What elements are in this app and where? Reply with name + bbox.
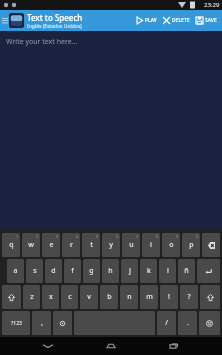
button[interactable]: m bbox=[140, 285, 158, 309]
staticText: Write your text here... bbox=[6, 37, 78, 47]
staticText: n bbox=[127, 292, 132, 302]
staticText: g bbox=[89, 266, 94, 276]
button[interactable]: e bbox=[42, 233, 60, 257]
button[interactable]: ? bbox=[180, 285, 198, 309]
staticText: 4 bbox=[76, 234, 79, 239]
staticText: Text to Speech bbox=[27, 12, 83, 23]
button[interactable]: Settings bbox=[53, 311, 72, 335]
staticText: SAVE bbox=[205, 17, 217, 24]
staticText: f bbox=[71, 266, 74, 276]
staticText: 0 bbox=[196, 234, 199, 239]
staticText: 3 bbox=[56, 234, 59, 239]
button[interactable]: ! bbox=[160, 285, 178, 309]
staticText: s bbox=[33, 266, 37, 276]
button[interactable]: n bbox=[120, 285, 138, 309]
button[interactable]: k bbox=[140, 259, 157, 283]
button[interactable]: s bbox=[26, 259, 43, 283]
staticText: 8 bbox=[156, 234, 159, 239]
button[interactable]: l bbox=[159, 259, 176, 283]
button[interactable]: y bbox=[102, 233, 120, 257]
staticText: o bbox=[169, 240, 174, 250]
button[interactable]: DELETE bbox=[160, 10, 193, 31]
button[interactable]: i bbox=[142, 233, 160, 257]
button[interactable]: g bbox=[83, 259, 100, 283]
staticText: m bbox=[146, 292, 153, 302]
button[interactable]: u bbox=[122, 233, 140, 257]
staticText: ! bbox=[168, 292, 170, 302]
staticText: l bbox=[167, 266, 169, 276]
staticText: . bbox=[187, 318, 189, 328]
staticText: q bbox=[9, 240, 14, 250]
button[interactable]: Open navigation drawer bbox=[0, 10, 9, 31]
button[interactable]: Enter bbox=[197, 259, 220, 283]
button[interactable]: x bbox=[42, 285, 59, 309]
staticText: Inglés (Estados Unidos) bbox=[27, 23, 82, 30]
staticText: y bbox=[109, 240, 113, 250]
button[interactable]: Home bbox=[96, 337, 126, 355]
staticText: b bbox=[107, 292, 112, 302]
button[interactable]: Back bbox=[33, 337, 63, 355]
button[interactable]: v bbox=[80, 285, 98, 309]
button[interactable]: r bbox=[62, 233, 80, 257]
button[interactable]: o bbox=[162, 233, 180, 257]
staticText: t bbox=[90, 240, 93, 250]
staticText: 5 bbox=[96, 234, 99, 239]
staticText: d bbox=[51, 266, 56, 276]
button[interactable]: Emoji bbox=[199, 311, 220, 335]
button[interactable]: ?123 bbox=[2, 311, 30, 335]
staticText: 23:29 bbox=[204, 1, 220, 9]
staticText: 9 bbox=[176, 234, 179, 239]
staticText: e bbox=[49, 240, 54, 250]
button[interactable]: ñ bbox=[178, 259, 195, 283]
staticText: 7 bbox=[136, 234, 139, 239]
button[interactable]: . bbox=[178, 311, 197, 335]
button[interactable]: f bbox=[64, 259, 81, 283]
button[interactable]: Shift bbox=[200, 285, 220, 309]
staticText: w bbox=[28, 240, 34, 250]
button[interactable]: PLAY bbox=[133, 10, 160, 31]
button[interactable]: Shift bbox=[2, 285, 21, 309]
staticText: v bbox=[87, 292, 91, 302]
staticText: ? bbox=[187, 292, 191, 302]
staticText: PLAY bbox=[145, 17, 157, 24]
button[interactable]: t bbox=[82, 233, 100, 257]
button[interactable]: SAVE bbox=[193, 10, 220, 31]
button[interactable]: Recent apps bbox=[159, 337, 189, 355]
button[interactable]: , bbox=[32, 311, 51, 335]
staticText: 2 bbox=[36, 234, 39, 239]
staticText: p bbox=[189, 240, 194, 250]
button[interactable]: h bbox=[102, 259, 119, 283]
button[interactable]: b bbox=[100, 285, 118, 309]
staticText: a bbox=[13, 266, 18, 276]
button[interactable]: p bbox=[182, 233, 200, 257]
staticText: c bbox=[68, 292, 72, 302]
button[interactable]: d bbox=[45, 259, 62, 283]
staticText: 6 bbox=[116, 234, 119, 239]
staticText: ?123 bbox=[11, 320, 22, 327]
staticText: r bbox=[70, 240, 73, 250]
staticText: / bbox=[165, 318, 168, 328]
staticText: j bbox=[129, 266, 131, 276]
button[interactable]: w bbox=[22, 233, 40, 257]
staticText: x bbox=[49, 292, 53, 302]
button[interactable]: z bbox=[23, 285, 40, 309]
button[interactable]: / bbox=[157, 311, 176, 335]
staticText: u bbox=[129, 240, 134, 250]
staticText: DELETE bbox=[172, 17, 190, 24]
button[interactable]: c bbox=[61, 285, 78, 309]
button[interactable]: a bbox=[7, 259, 24, 283]
staticText: i bbox=[150, 240, 152, 250]
staticText: 1 bbox=[16, 234, 19, 239]
staticText: , bbox=[41, 318, 43, 328]
button[interactable]: Backspace bbox=[202, 233, 220, 257]
staticText: k bbox=[147, 266, 151, 276]
staticText: z bbox=[30, 292, 34, 302]
button[interactable]: j bbox=[121, 259, 138, 283]
button[interactable]: q bbox=[2, 233, 20, 257]
staticText: h bbox=[108, 266, 113, 276]
staticText: ñ bbox=[184, 266, 189, 276]
